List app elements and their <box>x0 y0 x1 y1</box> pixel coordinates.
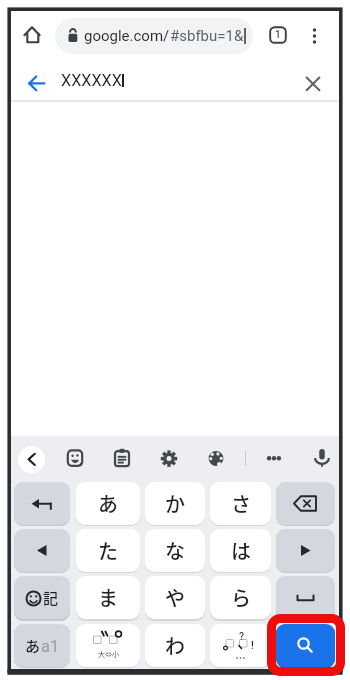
button[interactable] <box>307 444 337 474</box>
button[interactable] <box>18 21 46 49</box>
button[interactable] <box>259 444 289 474</box>
button[interactable]: あ <box>76 482 140 525</box>
button[interactable]: や <box>145 576 205 619</box>
button[interactable] <box>60 444 90 474</box>
staticText: は <box>231 536 251 565</box>
staticText: や <box>165 583 185 612</box>
button[interactable]: ? <box>210 624 271 667</box>
button[interactable] <box>300 21 328 49</box>
button[interactable]: な <box>145 529 205 572</box>
button[interactable]: た <box>76 529 140 572</box>
button[interactable] <box>276 529 335 572</box>
staticText: あ <box>98 489 118 518</box>
button[interactable]: わ <box>145 624 205 667</box>
button[interactable] <box>154 444 184 474</box>
staticText: 記 <box>43 587 59 609</box>
staticText: 大⇔小 <box>98 649 119 659</box>
button[interactable]: か <box>145 482 205 525</box>
button[interactable]: さ <box>210 482 271 525</box>
staticText: さ <box>231 489 251 518</box>
staticText: google.com/ <box>84 27 170 45</box>
staticText: a1 <box>41 637 60 656</box>
staticText: わ <box>165 631 185 660</box>
button[interactable]: 1 <box>263 20 293 50</box>
button[interactable] <box>14 529 70 572</box>
staticText: な <box>165 536 185 565</box>
button[interactable] <box>18 446 45 473</box>
button[interactable] <box>276 624 335 667</box>
button[interactable]: ま <box>76 576 140 619</box>
staticText: 1 <box>275 29 281 41</box>
staticText: あ <box>25 635 41 657</box>
staticText: #sbfbu=1& <box>170 27 244 45</box>
staticText: XXXXXX <box>61 71 122 90</box>
button[interactable]: あ <box>14 624 70 667</box>
staticText: ! <box>251 639 254 651</box>
button[interactable] <box>276 576 335 619</box>
button[interactable] <box>22 69 51 98</box>
staticText: た <box>98 536 118 565</box>
staticText: ま <box>98 583 118 612</box>
button[interactable] <box>107 444 137 474</box>
button[interactable] <box>276 482 335 525</box>
button[interactable]: 大⇔小 <box>76 624 140 667</box>
button[interactable]: は <box>210 529 271 572</box>
button[interactable] <box>298 69 328 99</box>
button[interactable]: google.com/ <box>55 18 253 54</box>
staticText: ら <box>231 583 251 612</box>
button[interactable]: ら <box>210 576 271 619</box>
button[interactable] <box>201 444 231 474</box>
button[interactable]: 記 <box>14 576 70 619</box>
button[interactable] <box>14 482 70 525</box>
staticText: か <box>165 489 185 518</box>
staticText: ? <box>239 630 245 642</box>
